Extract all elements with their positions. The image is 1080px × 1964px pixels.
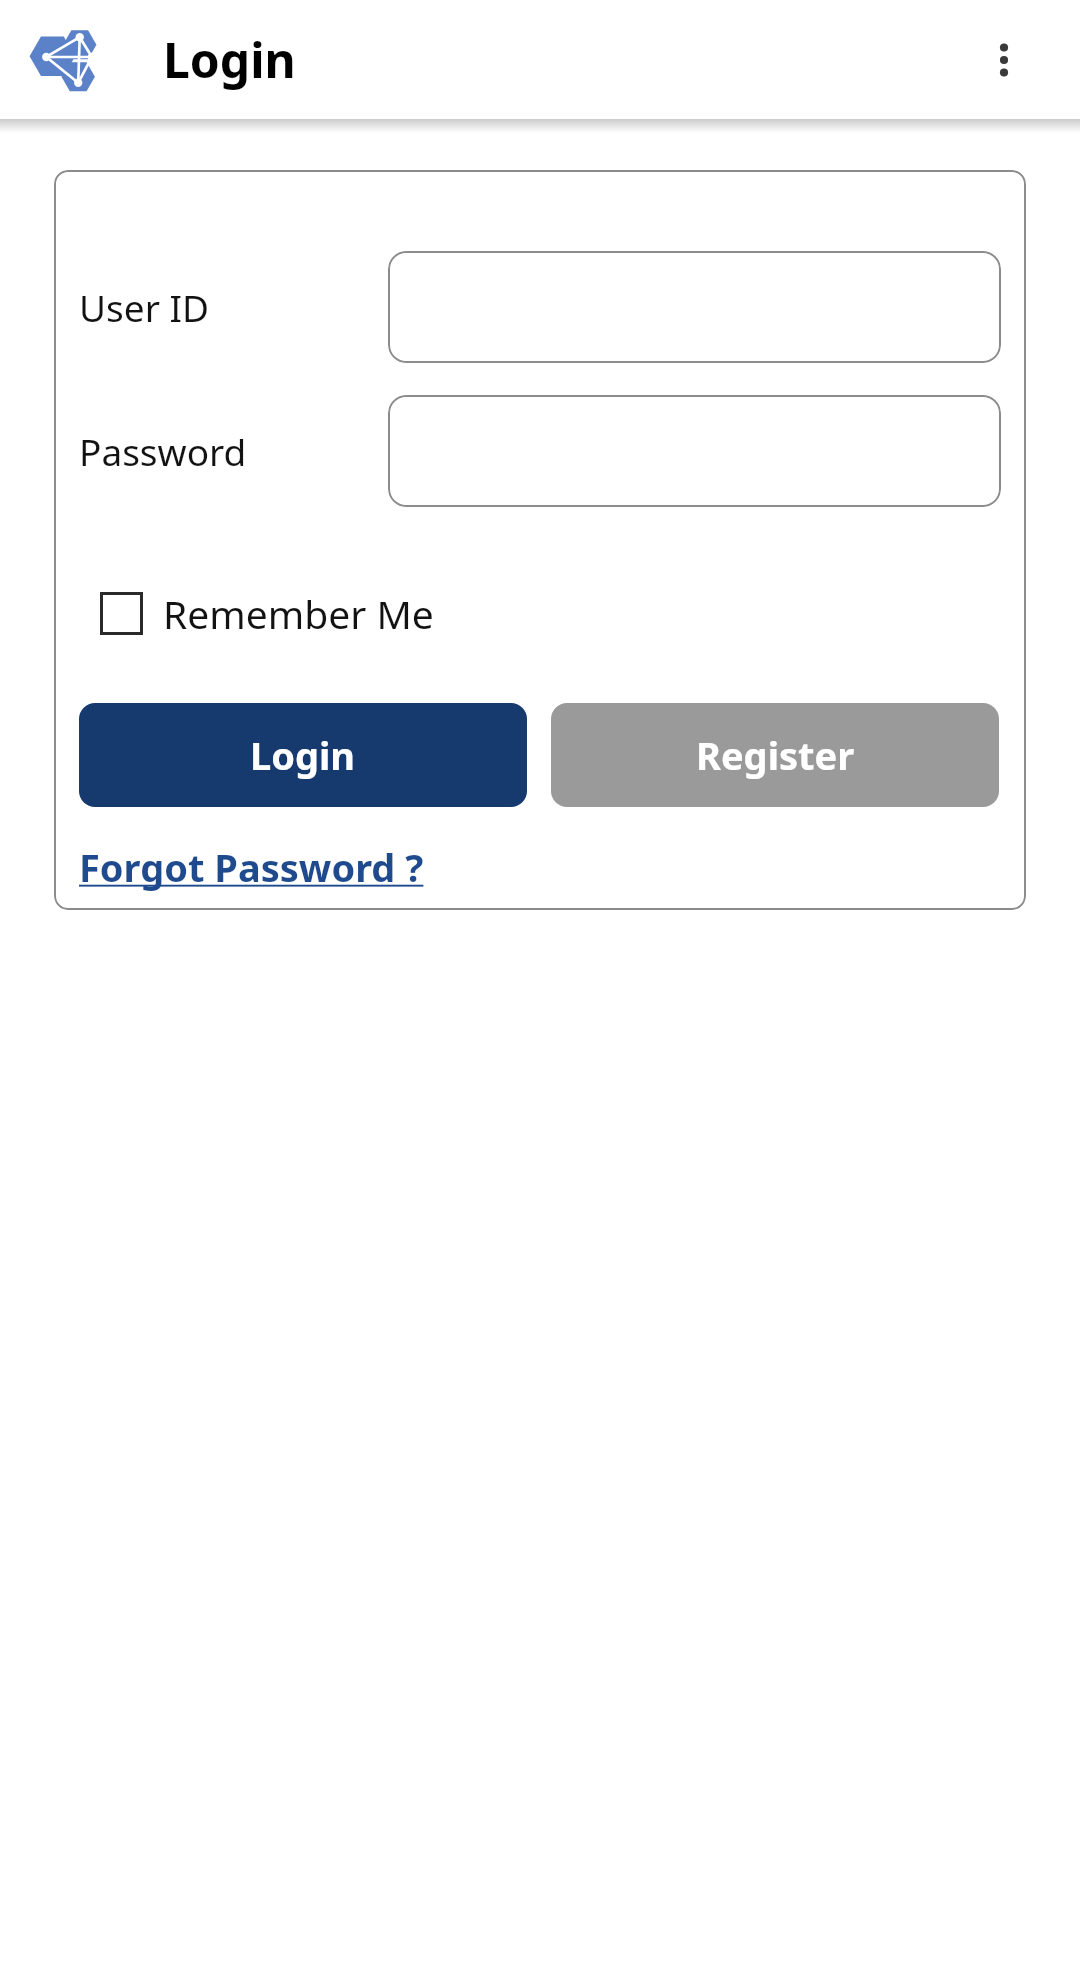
button[interactable]: Forgot Password ? [79,837,424,897]
button[interactable]: More options [956,12,1052,108]
button[interactable]: Password input [388,395,1001,507]
button[interactable]: Login [79,703,527,807]
button[interactable]: Remember Me [100,583,434,643]
staticText: Password [79,426,247,476]
button[interactable]: Register [551,703,999,807]
staticText: Register [696,729,855,781]
staticText: Login [163,27,296,92]
staticText: Remember Me [163,587,434,640]
staticText: User ID [79,282,210,332]
staticText: Login [250,729,356,781]
staticText: Forgot Password ? [79,841,424,893]
button[interactable]: User ID input [388,251,1001,363]
